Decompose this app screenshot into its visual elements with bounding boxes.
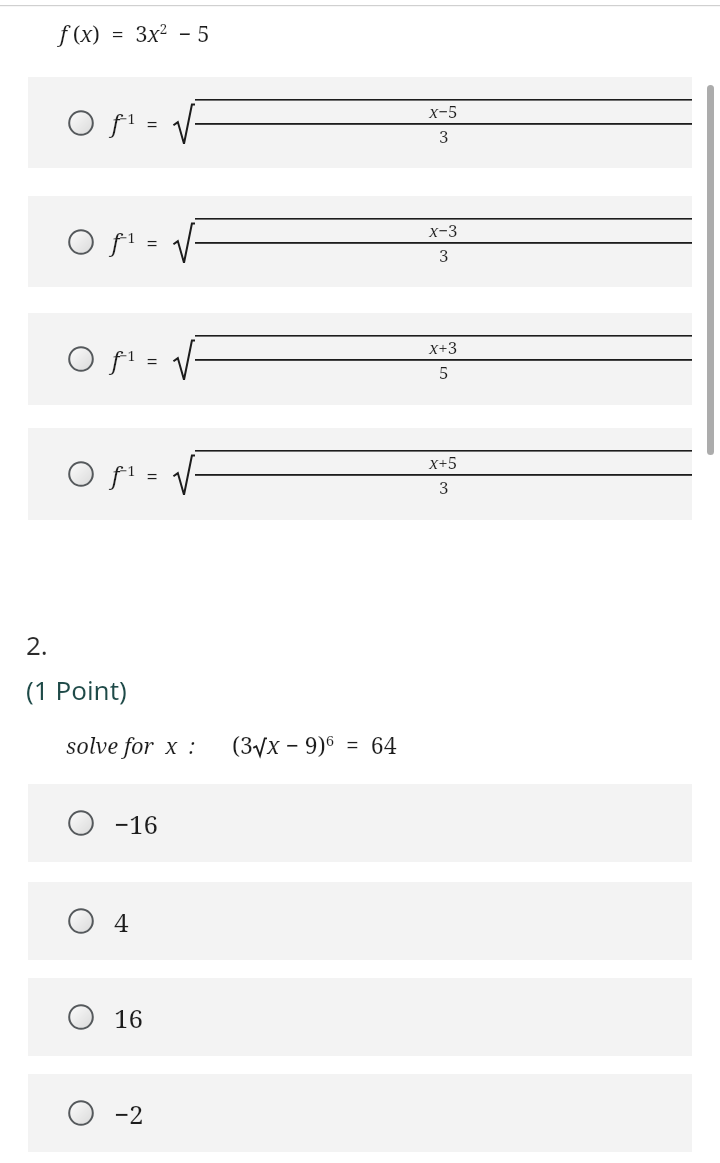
staticText: (3	[232, 729, 253, 760]
staticText: 4	[114, 904, 129, 939]
staticText: 5	[439, 361, 449, 384]
staticText: 3	[439, 125, 449, 148]
button[interactable]: −2	[28, 1074, 692, 1152]
button[interactable]: 4	[28, 882, 692, 960]
staticText: x+3	[429, 336, 458, 359]
button[interactable]: −16	[28, 784, 692, 862]
other: Scroll position	[707, 85, 714, 455]
staticText: f−1 =	[112, 107, 169, 138]
button[interactable]: f−1 =	[28, 196, 692, 287]
staticText: f−1 =	[112, 459, 169, 490]
staticText: −16	[114, 806, 159, 841]
staticText: x−3	[429, 219, 458, 242]
staticText: 3	[439, 476, 449, 499]
button[interactable]: f−1 =	[28, 428, 692, 520]
button[interactable]: 16	[28, 978, 692, 1056]
staticText: f (x) = 3x2 − 5	[60, 18, 210, 48]
staticText: x−5	[429, 100, 458, 123]
staticText: (1 Point)	[26, 672, 127, 707]
button[interactable]: f−1 =	[28, 77, 692, 168]
staticText: 2.	[26, 627, 48, 662]
staticText: x − 9)6 = 64	[267, 729, 397, 760]
button[interactable]: f−1 =	[28, 313, 692, 405]
staticText: 3	[439, 244, 449, 267]
staticText: solve for x :	[66, 730, 196, 760]
staticText: −2	[114, 1096, 144, 1131]
staticText: 16	[114, 1000, 144, 1035]
staticText: f−1 =	[112, 344, 169, 375]
staticText: f−1 =	[112, 226, 169, 257]
staticText: x+5	[429, 451, 458, 474]
